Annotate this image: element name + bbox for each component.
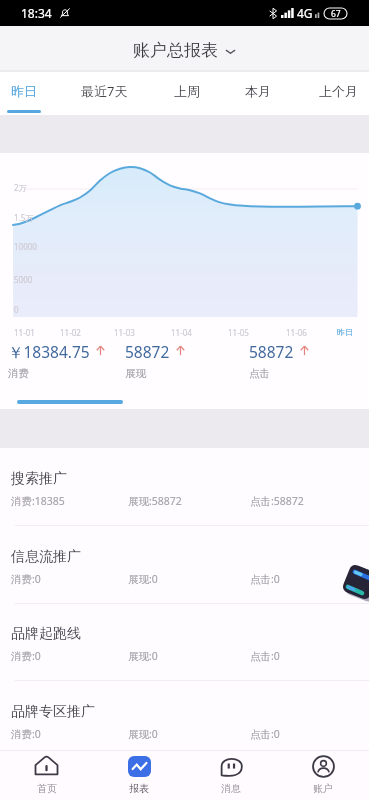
staticText: 最近7天	[81, 82, 128, 100]
button[interactable]: Reports	[93, 750, 185, 800]
staticText: 首页	[37, 782, 57, 795]
button[interactable]: Messages	[185, 750, 277, 800]
button[interactable]: 上个月	[306, 72, 369, 115]
staticText: 67	[331, 8, 341, 19]
staticText: 11-06	[286, 327, 307, 338]
staticText: 点击:0	[250, 727, 280, 741]
staticText: 上个月	[319, 83, 358, 99]
button[interactable]: 上周	[155, 72, 219, 115]
button[interactable]: 搜索推广	[0, 448, 369, 526]
staticText: 展现:0	[128, 727, 158, 741]
staticText: 展现:0	[128, 649, 158, 663]
staticText: 消费:0	[11, 649, 41, 663]
staticText: 展现	[125, 367, 146, 380]
button[interactable]: Promotion	[338, 560, 369, 606]
staticText: 11-05	[228, 327, 249, 338]
staticText: 消息	[221, 782, 241, 795]
staticText: 5000	[14, 274, 33, 285]
staticText: 消费	[8, 367, 29, 380]
staticText: 消费:18385	[11, 494, 65, 508]
staticText: 0	[14, 304, 19, 315]
staticText: 品牌起跑线	[11, 625, 81, 643]
staticText: 58872	[249, 341, 294, 362]
staticText: 品牌专区推广	[11, 703, 95, 721]
staticText: 点击	[249, 367, 270, 380]
staticText: 点击:58872	[250, 494, 304, 508]
staticText: 11-02	[60, 327, 81, 338]
staticText: 点击:0	[250, 572, 280, 586]
staticText: 点击:0	[250, 649, 280, 663]
staticText: 消费:0	[11, 727, 41, 741]
staticText: 4G	[297, 5, 313, 21]
button[interactable]: 信息流推广	[0, 526, 369, 604]
staticText: 11-03	[114, 327, 135, 338]
staticText: 上周	[174, 83, 200, 99]
staticText: ￥18384.75	[8, 341, 90, 362]
button[interactable]: 本月	[226, 72, 290, 115]
staticText: 信息流推广	[11, 548, 81, 566]
staticText: 昨日	[337, 327, 353, 337]
staticText: 昨日	[11, 83, 37, 99]
staticText: 18:34	[21, 5, 52, 21]
staticText: 11-01	[14, 327, 35, 338]
staticText: 11-04	[171, 327, 192, 338]
staticText: 1.5万	[14, 212, 34, 223]
staticText: 账户总报表	[133, 40, 218, 61]
staticText: 展现:58872	[128, 494, 182, 508]
staticText: 2万	[14, 182, 27, 193]
staticText: 展现:0	[128, 572, 158, 586]
button[interactable]: 品牌起跑线	[0, 603, 369, 681]
staticText: 58872	[125, 341, 170, 362]
button[interactable]: 最近7天	[72, 72, 136, 115]
button[interactable]: Account	[277, 750, 369, 800]
staticText: 报表	[129, 782, 149, 795]
staticText: 本月	[245, 83, 271, 99]
button[interactable]: 昨日	[0, 72, 56, 115]
button[interactable]: 账户总报表	[133, 40, 236, 61]
staticText: 消费:0	[11, 572, 41, 586]
button[interactable]: 品牌专区推广	[0, 681, 369, 759]
button[interactable]: Home	[0, 750, 93, 800]
staticText: 10000	[14, 241, 37, 252]
staticText: 搜索推广	[11, 470, 67, 488]
staticText: 账户	[313, 782, 333, 795]
